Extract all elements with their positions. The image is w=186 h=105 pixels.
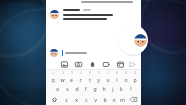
button[interactable]	[50, 9, 135, 20]
button[interactable]: v	[91, 94, 100, 105]
staticText: 2	[62, 71, 64, 75]
staticText: v	[94, 96, 97, 103]
button[interactable]: 2	[58, 70, 67, 83]
staticText: e	[70, 76, 73, 83]
staticText: 9	[125, 71, 127, 75]
button[interactable]: Backspace	[127, 94, 139, 105]
button[interactable]: GIF	[102, 60, 111, 69]
button[interactable]: g	[90, 83, 99, 94]
staticText: c	[85, 96, 88, 103]
button[interactable]: Chat bubble	[118, 25, 148, 55]
staticText: 0	[134, 71, 136, 75]
button[interactable]	[46, 0, 141, 7]
button[interactable]: 6	[94, 70, 103, 83]
staticText: f	[85, 85, 87, 92]
button[interactable]: 8	[112, 70, 121, 83]
staticText: m	[120, 96, 125, 103]
button[interactable]: 5	[85, 70, 94, 83]
button[interactable]: 1	[48, 70, 58, 83]
staticText: o	[124, 76, 128, 83]
staticText: t	[89, 76, 91, 83]
staticText: u	[106, 76, 110, 83]
staticText: 8	[116, 71, 118, 75]
staticText: r	[79, 76, 82, 83]
staticText: d	[75, 85, 79, 92]
staticText: a	[56, 85, 59, 92]
button[interactable]: m	[118, 94, 127, 105]
staticText: k	[120, 85, 123, 92]
staticText: w	[60, 76, 65, 83]
button[interactable]: b	[100, 94, 109, 105]
button[interactable]: 9	[121, 70, 130, 83]
staticText: 5	[89, 71, 91, 75]
staticText: h	[102, 85, 106, 92]
button[interactable]: j	[108, 83, 117, 94]
staticText: g	[93, 85, 97, 92]
button[interactable]: 7	[103, 70, 112, 83]
staticText: x	[75, 96, 78, 103]
button[interactable]: z	[61, 94, 71, 105]
button[interactable]: f	[81, 83, 90, 94]
button[interactable]: 0	[130, 70, 139, 83]
staticText: n	[112, 96, 116, 103]
staticText: z	[65, 96, 68, 103]
staticText: 3	[71, 71, 73, 75]
staticText: l	[130, 85, 132, 92]
button[interactable]: 4	[76, 70, 85, 83]
staticText: y	[97, 76, 100, 83]
button[interactable]: Camera	[74, 60, 83, 69]
staticText: p	[133, 76, 137, 83]
button[interactable]: l	[126, 83, 135, 94]
button[interactable]: d	[72, 83, 81, 94]
button[interactable]: Shift	[48, 94, 61, 105]
button[interactable]: k	[117, 83, 126, 94]
staticText: q	[51, 76, 55, 83]
button[interactable]	[50, 47, 135, 59]
button[interactable]: Stickers	[88, 60, 97, 69]
staticText: j	[112, 85, 114, 92]
button[interactable]: h	[99, 83, 108, 94]
button[interactable]: a	[52, 83, 62, 94]
staticText: b	[103, 96, 107, 103]
button[interactable]: Gallery	[60, 60, 69, 69]
button[interactable]: x	[71, 94, 81, 105]
button[interactable]: 3	[67, 70, 76, 83]
staticText: 1	[52, 71, 54, 75]
button[interactable]: Calendar	[116, 60, 125, 69]
staticText: 6	[98, 71, 100, 75]
staticText: 7	[107, 71, 109, 75]
staticText: i	[116, 76, 118, 83]
button[interactable]: s	[62, 83, 72, 94]
button[interactable]: Send	[128, 60, 137, 69]
button[interactable]: c	[81, 94, 91, 105]
staticText: s	[66, 85, 69, 92]
button[interactable]: n	[109, 94, 118, 105]
staticText: 4	[80, 71, 82, 75]
